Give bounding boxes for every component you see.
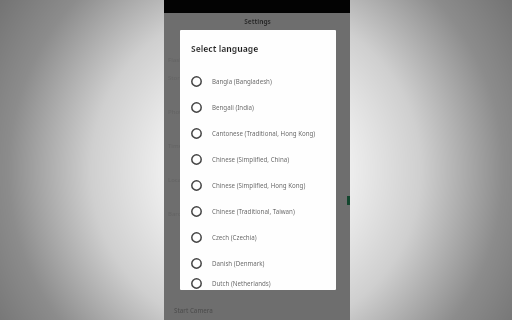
button[interactable]: Cantonese (Traditional, Hong Kong) (180, 120, 336, 146)
button[interactable]: Czech (Czechia) (180, 224, 336, 250)
staticText: Chinese (Simplified, China) (212, 155, 290, 163)
staticText: Storage (168, 74, 191, 82)
staticText: Photo size (168, 108, 198, 116)
staticText: Location (168, 176, 193, 184)
button[interactable]: Danish (Denmark) (180, 250, 336, 276)
staticText: Select language (191, 43, 259, 55)
staticText: Dutch (Netherlands) (212, 279, 271, 287)
staticText: Chinese (Simplified, Hong Kong) (212, 181, 306, 189)
staticText: Danish (Denmark) (212, 259, 265, 267)
staticText: Czech (Czechia) (212, 233, 257, 241)
staticText: Timer (168, 142, 185, 150)
button[interactable]: Chinese (Traditional, Taiwan) (180, 198, 336, 224)
staticText: Bangla (Bangladesh) (212, 77, 272, 85)
button[interactable]: Chinese (Simplified, China) (180, 146, 336, 172)
staticText: Cantonese (Traditional, Hong Kong) (212, 129, 316, 137)
staticText: Flash (168, 56, 183, 64)
staticText: Bengali (India) (212, 103, 254, 111)
button[interactable]: Bangla (Bangladesh) (180, 68, 336, 94)
button[interactable]: Chinese (Simplified, Hong Kong) (180, 172, 336, 198)
staticText: Barcode (168, 210, 192, 218)
button[interactable]: Dutch (Netherlands) (180, 276, 336, 290)
staticText: Start Camera (174, 306, 213, 314)
staticText: Settings (244, 17, 271, 26)
button[interactable]: Bengali (India) (180, 94, 336, 120)
staticText: Chinese (Traditional, Taiwan) (212, 207, 295, 215)
